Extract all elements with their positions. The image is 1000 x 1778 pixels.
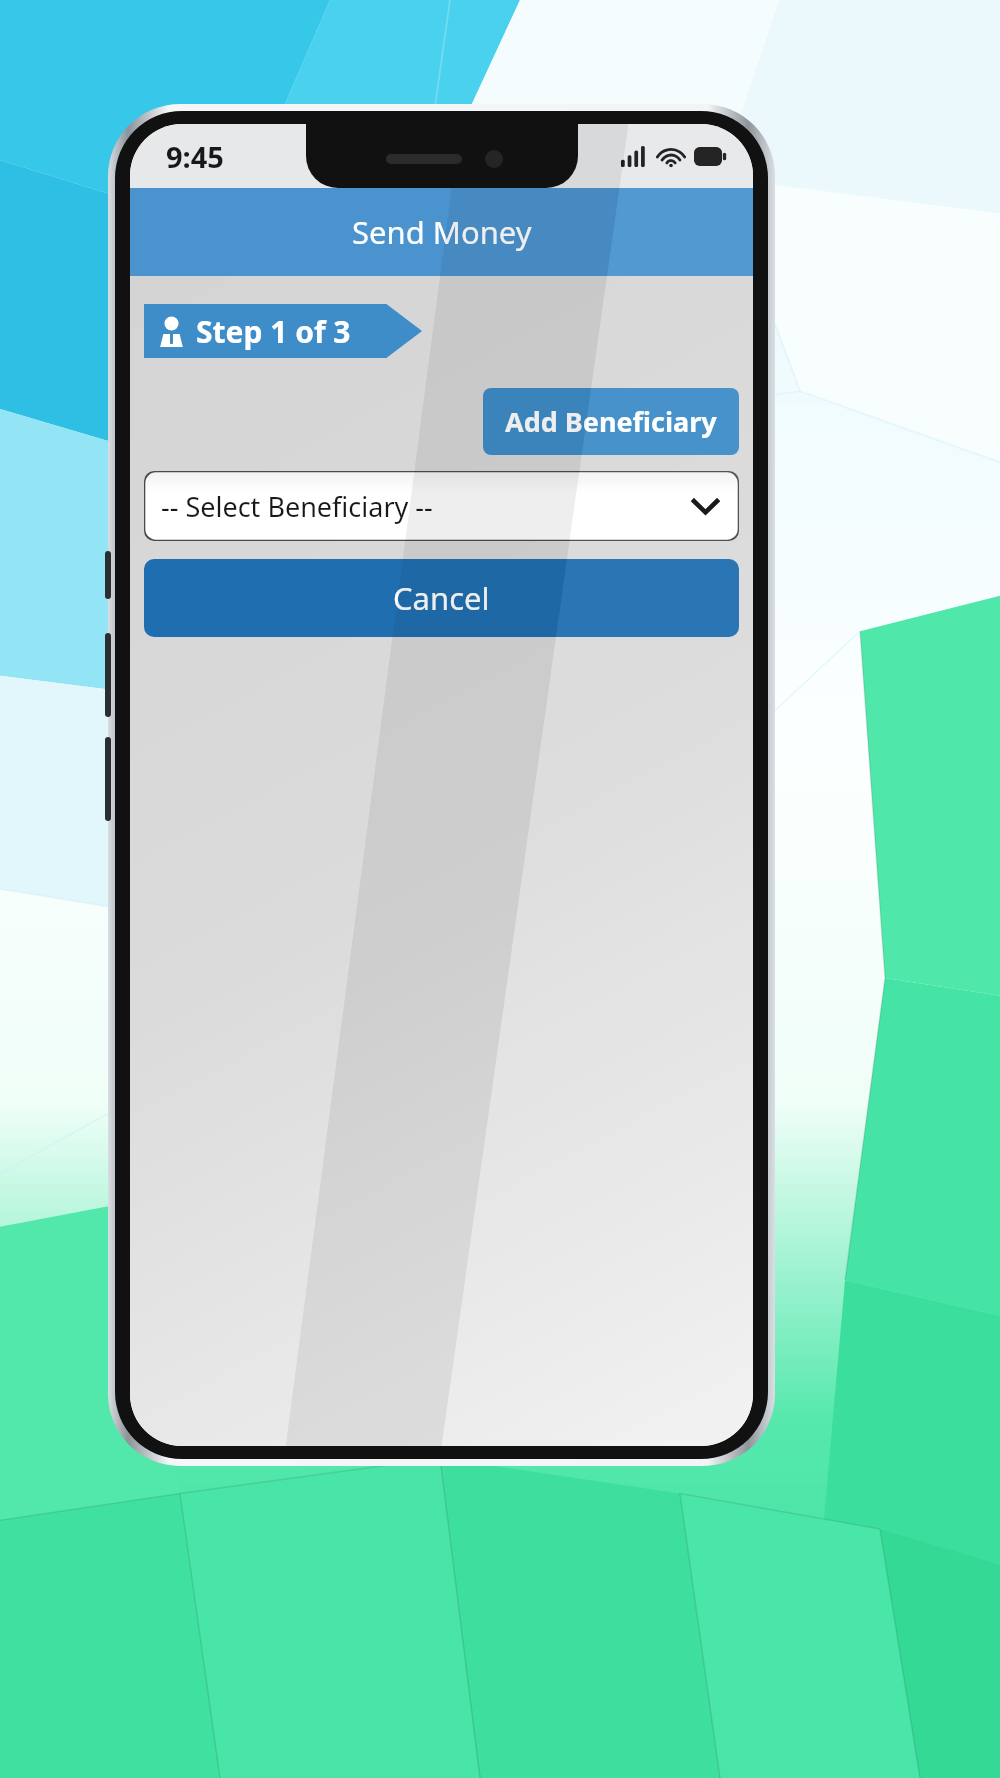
staticText: Send Money	[352, 211, 532, 253]
staticText: Step 1 of 3	[196, 311, 351, 352]
staticText: 9:45	[166, 137, 224, 176]
button[interactable]: Add Beneficiary	[483, 388, 739, 455]
staticText: Add Beneficiary	[505, 403, 717, 440]
other: Open beneficiary list	[694, 499, 717, 513]
staticText: -- Select Beneficiary --	[161, 488, 433, 525]
button[interactable]: Step 1 of 3	[144, 304, 422, 358]
button[interactable]: -- Select Beneficiary --	[144, 471, 739, 541]
staticText: Cancel	[393, 577, 490, 619]
button[interactable]: Cancel	[144, 559, 739, 637]
